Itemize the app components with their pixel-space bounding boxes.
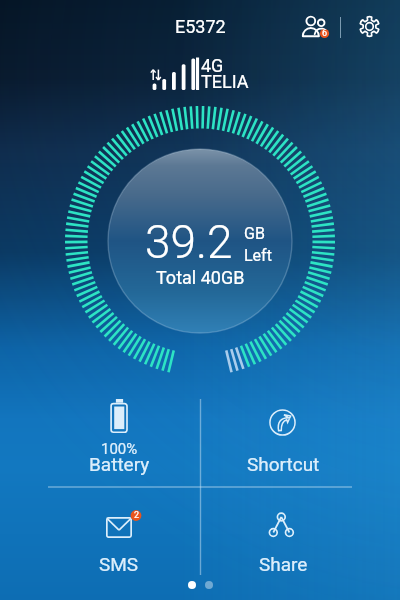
staticText: TELIA (201, 71, 249, 92)
button[interactable]: Share (193, 487, 373, 600)
staticText: Battery (89, 453, 150, 475)
button[interactable]: 2 (29, 487, 209, 600)
staticText: Left (244, 246, 272, 265)
staticText: 4G (201, 55, 224, 76)
staticText: 100% (101, 440, 138, 458)
staticText: 6 (322, 28, 328, 39)
staticText: GB (244, 224, 265, 243)
button[interactable]: 100% (29, 388, 209, 487)
button[interactable]: Settings (348, 4, 392, 50)
staticText: Shortcut (247, 453, 320, 475)
staticText: 2 (134, 510, 140, 521)
staticText: SMS (99, 553, 139, 575)
staticText: E5372 (175, 16, 226, 37)
staticText: 39.2 (145, 215, 233, 269)
button[interactable]: Shortcut (193, 388, 373, 487)
button[interactable]: Connected devices (296, 4, 340, 50)
staticText: Total 40GB (156, 267, 245, 288)
staticText: Share (259, 553, 308, 575)
